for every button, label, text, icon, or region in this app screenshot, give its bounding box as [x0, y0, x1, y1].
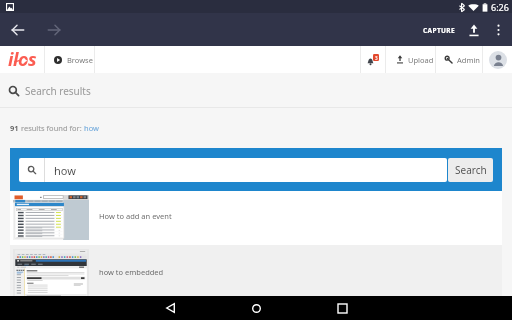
button[interactable]: Account [483, 46, 512, 73]
button[interactable]: Search [448, 158, 493, 182]
staticText: Admin [457, 55, 480, 65]
button[interactable]: Browse [45, 46, 94, 73]
button[interactable]: Back [0, 13, 36, 46]
button[interactable]: iLos home [0, 46, 44, 73]
staticText: Search [455, 163, 487, 177]
button[interactable]: Back [148, 296, 192, 320]
button[interactable]: Forward [36, 13, 72, 46]
staticText: Upload [408, 55, 434, 65]
staticText: ilos [8, 47, 37, 72]
button[interactable]: how to embedded [10, 245, 502, 299]
staticText: 6:26 [491, 1, 509, 13]
staticText: Browse [67, 55, 93, 65]
staticText: How to add an event [99, 211, 172, 221]
button[interactable]: Admin [436, 46, 482, 73]
staticText: 91 [10, 123, 19, 133]
button[interactable]: Upload [386, 46, 435, 73]
staticText: 3 [375, 55, 378, 61]
button[interactable]: CAPTURE [418, 20, 461, 41]
button[interactable]: More options [487, 19, 509, 41]
staticText: how [84, 123, 99, 133]
button[interactable]: Notifications [361, 46, 385, 73]
staticText: Search results [25, 84, 91, 98]
button[interactable]: how [19, 158, 447, 182]
staticText: how [54, 163, 76, 178]
button[interactable]: Upload [461, 17, 487, 43]
button[interactable]: Recents [320, 296, 364, 320]
button[interactable]: Home [234, 296, 278, 320]
staticText: results found for: [19, 123, 84, 133]
staticText: how to embedded [99, 267, 164, 277]
staticText: CAPTURE [423, 26, 456, 35]
button[interactable]: How to add an event [10, 191, 502, 245]
